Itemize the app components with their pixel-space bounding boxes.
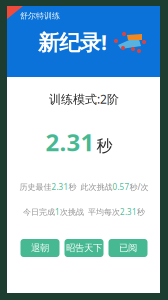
staticText: 秒/次 — [129, 182, 148, 192]
staticText: 2.31 — [51, 182, 68, 192]
staticText: 训练模式:2阶 — [49, 91, 119, 107]
staticText: 舒尔特训练 — [20, 11, 60, 21]
staticText: 今日完成 — [23, 207, 55, 217]
staticText: 退朝 — [31, 242, 49, 254]
staticText: 秒 — [68, 182, 76, 192]
staticText: 历史最佳 — [19, 182, 51, 192]
staticText: 此次挑战 — [76, 182, 112, 192]
staticText: 2.31 — [120, 207, 137, 217]
staticText: 2.31 — [45, 126, 94, 158]
staticText: 0.57 — [112, 182, 129, 192]
staticText: 平均每次 — [84, 207, 120, 217]
staticText: 1 — [55, 207, 60, 217]
staticText: 已阅 — [119, 242, 137, 254]
button[interactable]: 退朝 — [20, 239, 59, 257]
button[interactable]: 昭告天下 — [64, 239, 103, 257]
staticText: 秒 — [137, 207, 145, 217]
staticText: 次挑战 — [60, 207, 84, 217]
staticText: 新纪录! — [38, 28, 107, 56]
staticText: 秒 — [96, 136, 112, 156]
staticText: 昭告天下 — [66, 242, 102, 254]
button[interactable]: 已阅 — [108, 239, 147, 257]
